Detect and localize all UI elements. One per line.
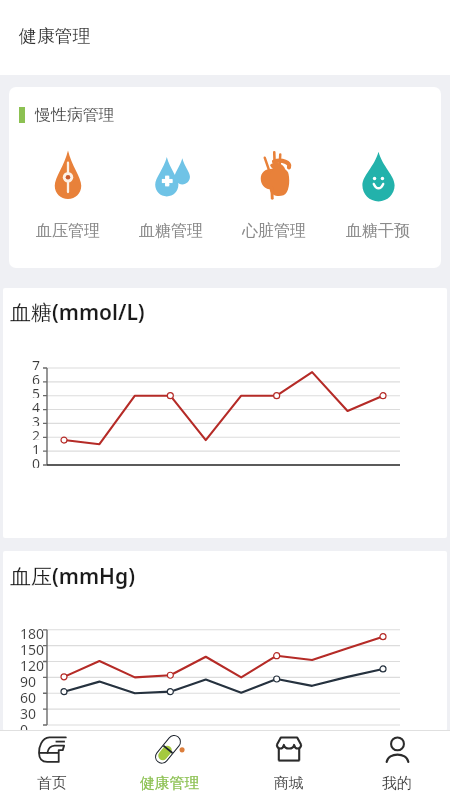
other: Home: [35, 732, 69, 766]
staticText: 我的: [382, 774, 412, 793]
staticText: 90: [20, 672, 37, 688]
staticText: 150: [20, 640, 45, 656]
staticText: 7: [32, 356, 41, 370]
staticText: 120: [20, 656, 45, 672]
button[interactable]: 心脏管理: [222, 150, 326, 241]
staticText: 0: [20, 720, 29, 731]
staticText: 1: [32, 440, 41, 454]
staticText: 30: [20, 704, 37, 720]
staticText: 60: [20, 688, 37, 704]
other: Health management: [153, 732, 187, 766]
staticText: 0: [32, 454, 41, 468]
staticText: 健康管理: [19, 25, 91, 48]
staticText: 血糖(mmol/L): [10, 298, 145, 327]
button[interactable]: Shop: [224, 731, 337, 800]
button[interactable]: 血压管理: [16, 150, 119, 241]
button[interactable]: Profile: [337, 731, 450, 800]
other: Profile: [380, 732, 414, 766]
staticText: 180: [20, 624, 45, 640]
staticText: 血糖干预: [346, 221, 410, 241]
staticText: 4: [32, 398, 41, 412]
staticText: 6: [32, 370, 41, 384]
staticText: 心脏管理: [242, 221, 306, 241]
button[interactable]: Home: [0, 731, 112, 800]
staticText: 首页: [37, 774, 67, 793]
button[interactable]: 血糖干预: [326, 150, 430, 241]
staticText: 血压管理: [36, 221, 100, 241]
staticText: 商城: [274, 774, 304, 793]
staticText: 慢性病管理: [35, 105, 115, 125]
button[interactable]: 血糖管理: [119, 150, 222, 241]
staticText: 健康管理: [140, 774, 200, 793]
staticText: 2: [32, 426, 41, 440]
other: Shop: [272, 732, 306, 766]
staticText: 3: [32, 412, 41, 426]
staticText: 血压(mmHg): [10, 562, 135, 591]
staticText: 5: [32, 384, 41, 398]
button[interactable]: Health management: [112, 731, 224, 800]
staticText: 血糖管理: [139, 221, 203, 241]
